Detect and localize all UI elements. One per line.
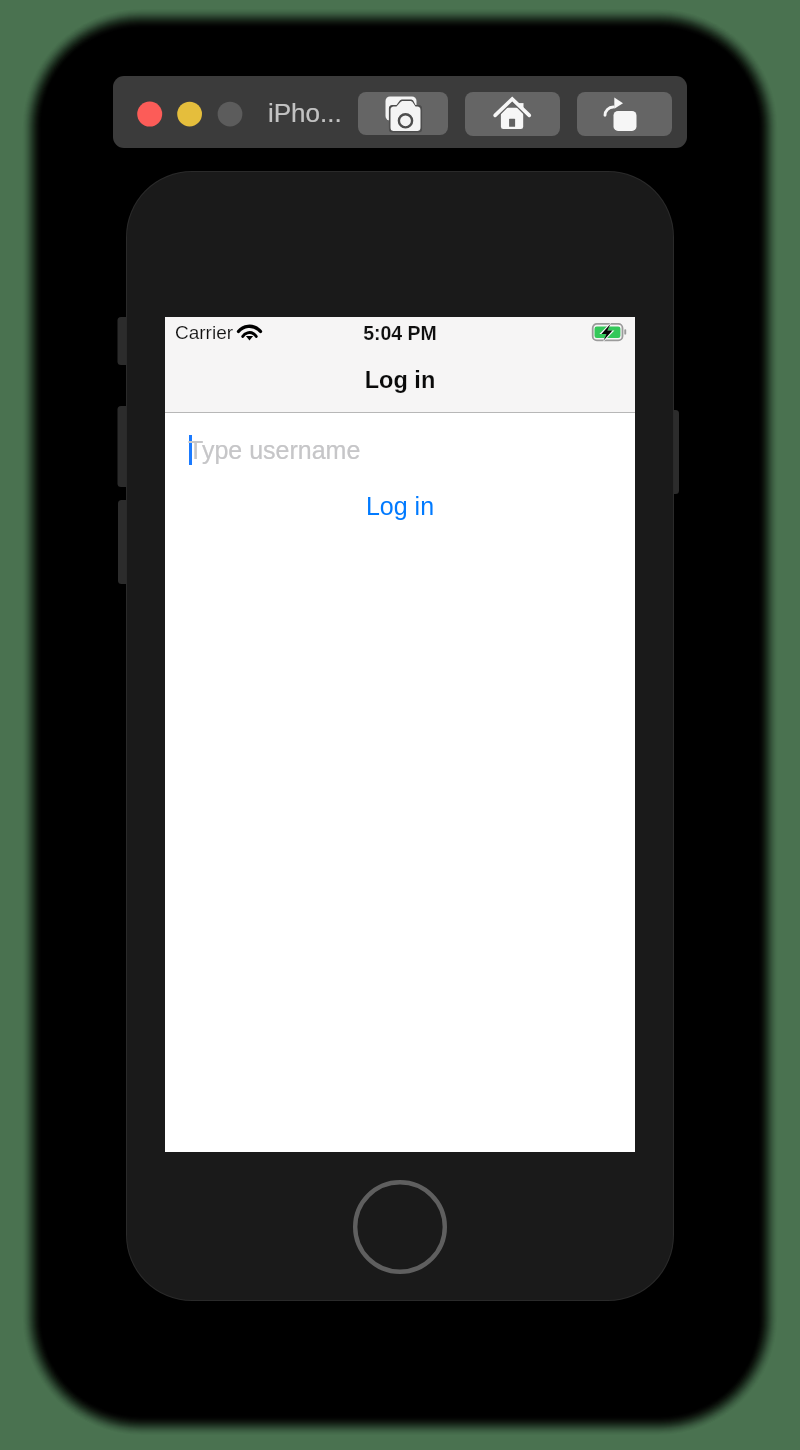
staticText: 5:04 PM <box>165 322 635 344</box>
staticText: Type username <box>188 436 361 464</box>
button[interactable]: Type username <box>165 413 635 471</box>
button[interactable]: Log in <box>165 471 635 529</box>
staticText: Carrier <box>175 322 234 343</box>
staticText: iPho... <box>268 98 342 127</box>
staticText: Log in <box>165 367 635 393</box>
button[interactable]: Home <box>465 92 560 136</box>
button[interactable]: Rotate <box>577 92 672 136</box>
button[interactable]: Screenshot <box>358 92 448 135</box>
staticText: Log in <box>165 492 635 520</box>
